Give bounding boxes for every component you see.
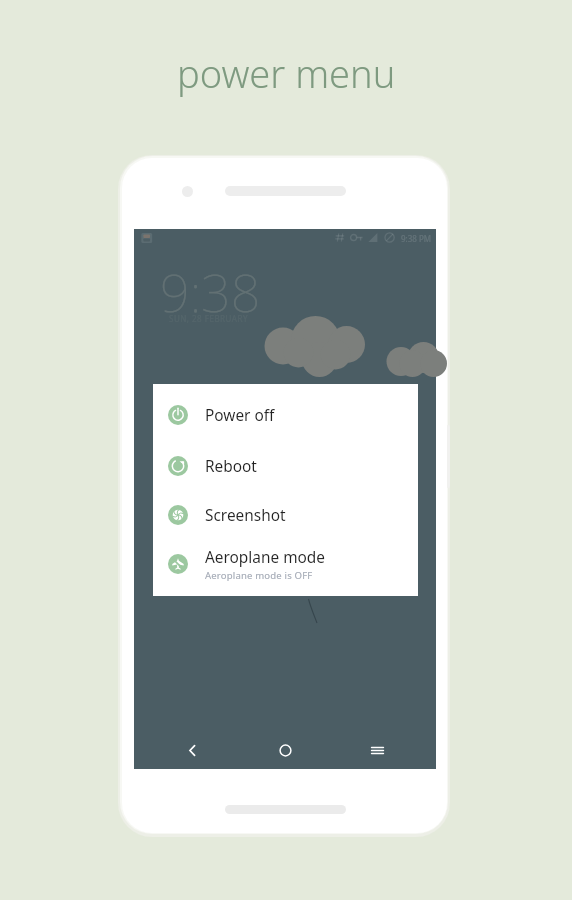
button[interactable]: Home	[265, 732, 305, 769]
button[interactable]: Reboot	[153, 446, 418, 486]
button[interactable]: Aeroplane mode	[153, 541, 418, 587]
staticText: power menu	[177, 47, 396, 99]
button[interactable]: Power off	[153, 395, 418, 435]
button[interactable]: Back	[172, 732, 212, 769]
staticText: Aeroplane mode	[205, 547, 325, 568]
button[interactable]: Recent apps	[357, 732, 397, 769]
button[interactable]: Screenshot	[153, 495, 418, 535]
staticText: Power off	[205, 405, 275, 426]
staticText: 9:38 PM	[401, 233, 432, 244]
staticText: Screenshot	[205, 505, 286, 526]
staticText: Aeroplane mode is OFF	[205, 569, 313, 582]
staticText: 9:38	[160, 256, 261, 327]
staticText: Reboot	[205, 456, 257, 477]
